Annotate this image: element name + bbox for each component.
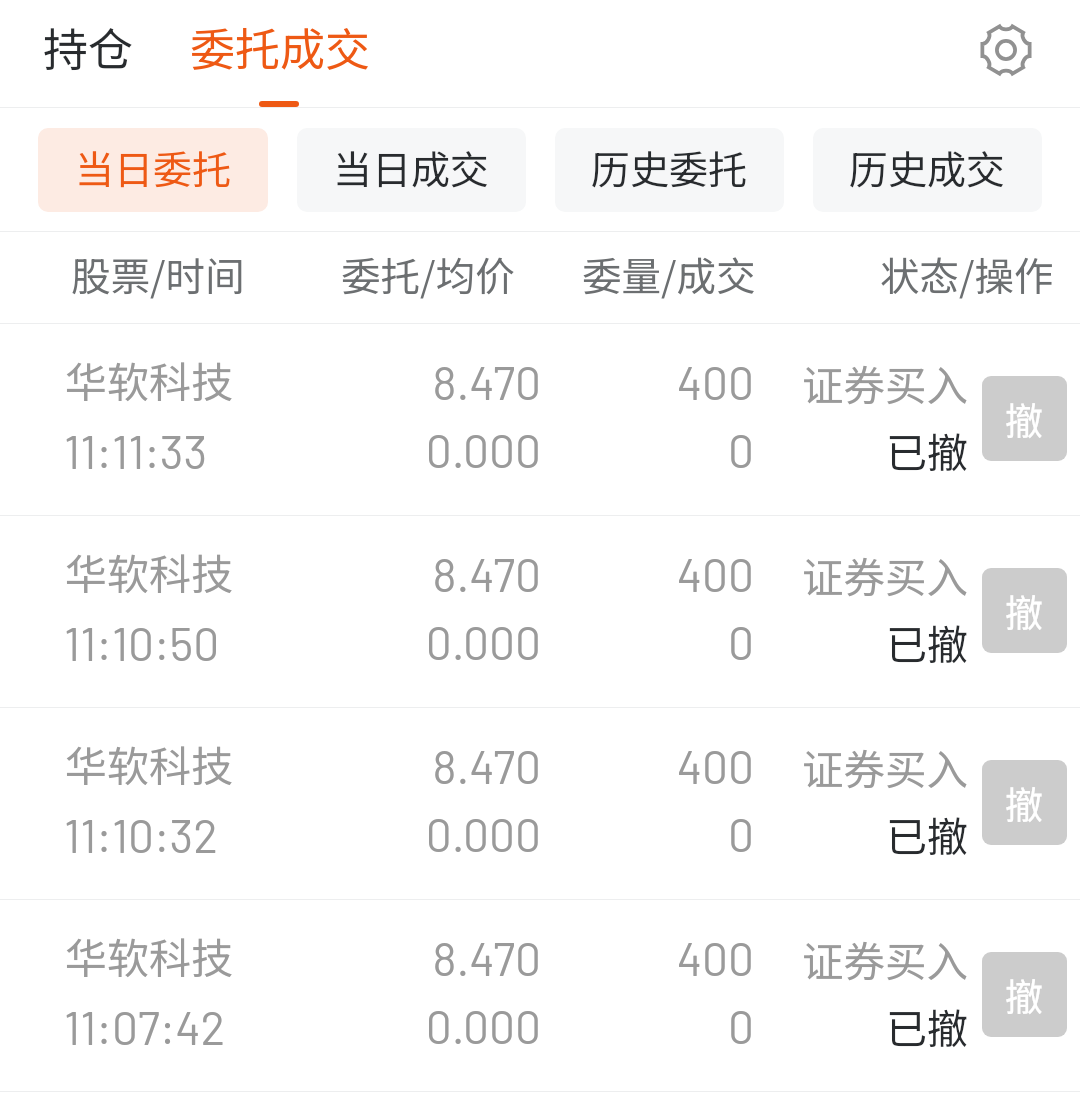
staticText: 400 — [354, 930, 754, 985]
staticText: 0 — [354, 614, 754, 669]
button[interactable]: Settings — [968, 12, 1044, 88]
staticText: 委量/成交 — [582, 245, 756, 302]
staticText: 华软科技 — [65, 349, 234, 410]
button[interactable]: 华软科技 — [0, 900, 1080, 1091]
staticText: 0.000 — [141, 806, 541, 861]
staticText: 0 — [354, 422, 754, 477]
button[interactable]: 撤 — [982, 376, 1067, 461]
button[interactable]: 当日委托 — [38, 128, 268, 212]
staticText: 已撤 — [568, 996, 968, 1055]
staticText: 持仓 — [43, 14, 134, 79]
staticText: 当日成交 — [333, 139, 490, 195]
staticText: 11:10:50 — [64, 615, 220, 670]
button[interactable]: 华软科技 — [0, 708, 1080, 899]
staticText: 11:10:32 — [64, 807, 218, 862]
staticText: 已撤 — [568, 804, 968, 863]
staticText: 华软科技 — [65, 925, 234, 986]
staticText: 撤 — [1005, 967, 1044, 1022]
staticText: 委托/均价 — [341, 245, 515, 302]
staticText: 证券买入 — [568, 929, 968, 989]
button[interactable]: 华软科技 — [0, 516, 1080, 707]
staticText: 股票/时间 — [71, 245, 245, 302]
staticText: 400 — [354, 354, 754, 409]
staticText: 历史委托 — [591, 139, 748, 195]
staticText: 0.000 — [141, 614, 541, 669]
button[interactable]: 历史委托 — [555, 128, 784, 212]
staticText: 已撤 — [568, 612, 968, 671]
button[interactable]: 华软科技 — [0, 324, 1080, 515]
staticText: 历史成交 — [849, 139, 1006, 195]
staticText: 0 — [354, 998, 754, 1053]
staticText: 当日委托 — [75, 139, 232, 195]
staticText: 0 — [354, 806, 754, 861]
staticText: 已撤 — [568, 420, 968, 479]
staticText: 状态/操作 — [880, 245, 1054, 302]
staticText: 11:11:33 — [64, 423, 208, 478]
button[interactable]: 撤 — [982, 952, 1067, 1037]
staticText: 华软科技 — [65, 541, 234, 602]
button[interactable]: 撤 — [982, 760, 1067, 845]
staticText: 8.470 — [141, 930, 541, 985]
staticText: 0.000 — [141, 422, 541, 477]
staticText: 证券买入 — [568, 353, 968, 413]
staticText: 11:07:42 — [64, 999, 226, 1054]
staticText: 撤 — [1005, 583, 1044, 638]
button[interactable]: 当日成交 — [297, 128, 526, 212]
staticText: 400 — [354, 546, 754, 601]
staticText: 证券买入 — [568, 545, 968, 605]
staticText: 8.470 — [141, 546, 541, 601]
staticText: 证券买入 — [568, 737, 968, 797]
staticText: 华软科技 — [65, 733, 234, 794]
staticText: 8.470 — [141, 354, 541, 409]
staticText: 8.470 — [141, 738, 541, 793]
button[interactable]: 撤 — [982, 568, 1067, 653]
staticText: 委托成交 — [190, 14, 371, 79]
staticText: 撤 — [1005, 391, 1044, 446]
button[interactable]: 委托成交 — [190, 14, 371, 79]
button[interactable]: 历史成交 — [813, 128, 1042, 212]
staticText: 400 — [354, 738, 754, 793]
button[interactable]: 持仓 — [43, 14, 134, 79]
staticText: 撤 — [1005, 775, 1044, 830]
staticText: 0.000 — [141, 998, 541, 1053]
